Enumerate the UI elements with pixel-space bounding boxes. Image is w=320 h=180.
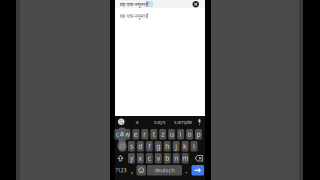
button[interactable]: g bbox=[155, 141, 162, 151]
staticText: . bbox=[185, 165, 187, 175]
button[interactable]: y bbox=[128, 153, 135, 163]
button[interactable]: v bbox=[155, 153, 162, 163]
staticText: k bbox=[183, 142, 187, 151]
button[interactable]: Shift bbox=[115, 153, 126, 163]
staticText: l bbox=[193, 142, 195, 151]
staticText: e bbox=[134, 130, 138, 139]
staticText: f bbox=[148, 142, 150, 151]
button[interactable]: Backspace bbox=[193, 153, 204, 163]
staticText: s bbox=[130, 142, 133, 151]
button[interactable]: a bbox=[119, 141, 126, 151]
staticText: r bbox=[143, 130, 146, 139]
staticText: यह एक नमूना है bbox=[119, 12, 148, 19]
button[interactable]: Voice input bbox=[197, 118, 202, 125]
button[interactable]: w bbox=[123, 129, 130, 139]
button[interactable]: ?123 bbox=[114, 165, 127, 175]
button[interactable]: c bbox=[146, 153, 153, 163]
staticText: w bbox=[124, 130, 129, 139]
button[interactable]: e bbox=[132, 129, 139, 139]
button[interactable]: s bbox=[128, 141, 135, 151]
button[interactable]: q bbox=[114, 129, 121, 139]
staticText: x bbox=[138, 154, 142, 163]
button[interactable]: x bbox=[137, 153, 144, 163]
staticText: says bbox=[154, 118, 166, 126]
staticText: a bbox=[120, 129, 124, 138]
staticText: q bbox=[116, 130, 120, 139]
staticText: o bbox=[187, 130, 191, 139]
button[interactable]: f bbox=[146, 141, 153, 151]
button[interactable]: Google search bbox=[118, 118, 124, 125]
staticText: t bbox=[153, 130, 155, 139]
button[interactable]: यह एक नमूना है bbox=[119, 12, 169, 19]
staticText: h bbox=[165, 142, 169, 151]
button[interactable]: Send bbox=[191, 165, 204, 175]
button[interactable]: t bbox=[150, 129, 157, 139]
button[interactable]: l bbox=[191, 141, 197, 151]
staticText: u bbox=[170, 130, 174, 139]
button[interactable]: b bbox=[164, 153, 171, 163]
button[interactable]: Space bbox=[147, 165, 182, 175]
staticText: p bbox=[196, 130, 200, 139]
button[interactable]: says bbox=[151, 118, 169, 125]
button[interactable]: , bbox=[128, 165, 135, 175]
button[interactable]: m bbox=[182, 153, 189, 163]
button[interactable]: h bbox=[164, 141, 171, 151]
staticText: ?123 bbox=[115, 167, 126, 174]
button[interactable]: Emoji bbox=[136, 165, 146, 175]
staticText: sample bbox=[174, 118, 192, 126]
button[interactable]: n bbox=[173, 153, 180, 163]
staticText: c bbox=[148, 154, 151, 163]
staticText: a bbox=[135, 118, 138, 126]
button[interactable]: p bbox=[195, 129, 202, 139]
staticText: G bbox=[119, 118, 123, 125]
staticText: n bbox=[174, 154, 178, 163]
staticText: j bbox=[175, 142, 177, 151]
button[interactable]: u bbox=[168, 129, 175, 139]
button[interactable]: sample bbox=[172, 118, 194, 125]
staticText: a bbox=[120, 142, 124, 151]
button[interactable]: j bbox=[173, 141, 180, 151]
staticText: m bbox=[182, 154, 188, 163]
staticText: z bbox=[161, 130, 164, 139]
staticText: y bbox=[130, 154, 133, 163]
staticText: g bbox=[156, 142, 160, 151]
button[interactable]: Clear text bbox=[192, 1, 199, 7]
button[interactable]: z bbox=[159, 129, 166, 139]
button[interactable]: a bbox=[131, 118, 143, 125]
button[interactable]: r bbox=[141, 129, 148, 139]
staticText: d bbox=[138, 142, 142, 151]
staticText: , bbox=[131, 165, 133, 175]
staticText: यह एक नमूना है bbox=[119, 0, 148, 8]
staticText: i bbox=[180, 130, 182, 139]
button[interactable]: k bbox=[182, 141, 188, 151]
button[interactable]: . bbox=[183, 165, 190, 175]
staticText: v bbox=[157, 154, 160, 163]
button[interactable]: d bbox=[137, 141, 144, 151]
button[interactable]: o bbox=[186, 129, 193, 139]
staticText: b bbox=[165, 154, 169, 163]
staticText: deutsch bbox=[154, 167, 174, 174]
button[interactable]: i bbox=[177, 129, 184, 139]
